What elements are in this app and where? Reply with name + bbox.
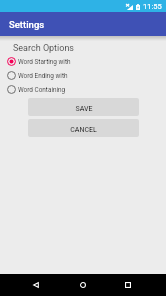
button[interactable]: CANCEL [28, 119, 139, 137]
button[interactable]: Recent apps [116, 274, 140, 296]
staticText: SAVE [75, 105, 93, 113]
button[interactable]: SAVE [28, 98, 139, 116]
button[interactable]: Word Starting with [0, 55, 166, 68]
button[interactable]: Back [24, 274, 48, 296]
button[interactable]: Home [71, 274, 95, 296]
button[interactable]: Word Ending with [0, 69, 166, 82]
staticText: CANCEL [70, 126, 97, 134]
staticText: Word Ending with [18, 72, 68, 80]
staticText: Search Options [13, 43, 75, 54]
staticText: Word Containing [18, 86, 66, 94]
staticText: Word Starting with [18, 58, 71, 66]
staticText: 11:55 [143, 2, 162, 11]
staticText: Settings [9, 19, 45, 30]
button[interactable]: Word Containing [0, 83, 166, 96]
